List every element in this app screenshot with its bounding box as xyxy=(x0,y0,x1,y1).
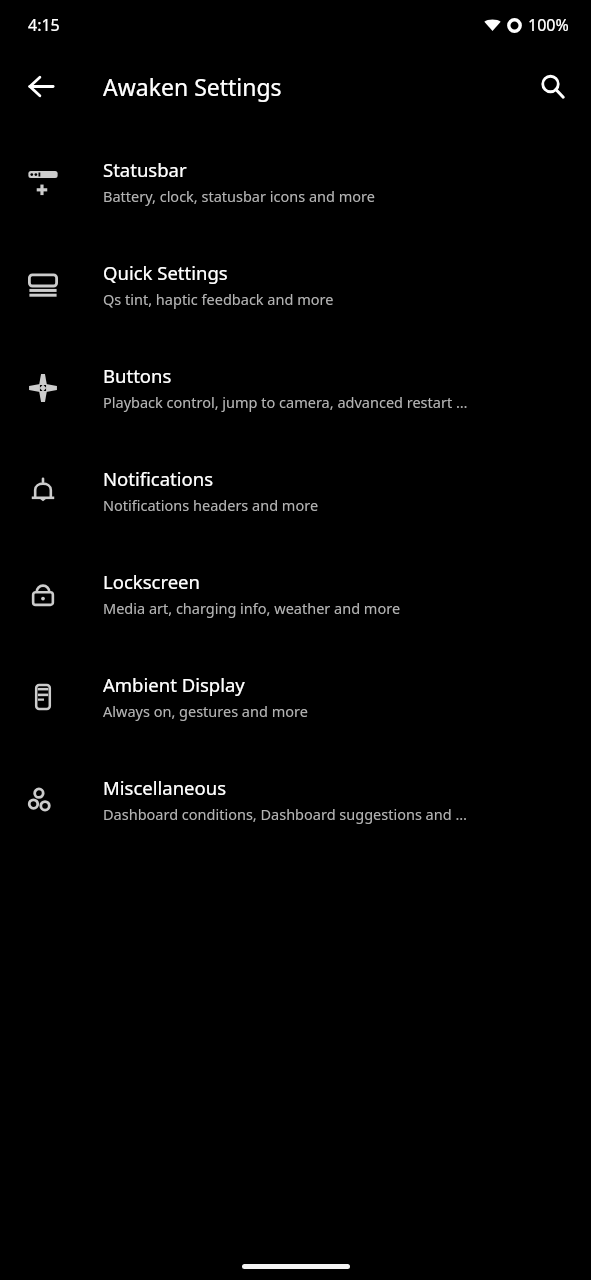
staticText: Buttons xyxy=(103,363,172,388)
staticText: Miscellaneous xyxy=(103,775,227,800)
staticText: Dashboard conditions, Dashboard suggesti… xyxy=(103,804,467,824)
staticText: Notifications xyxy=(103,466,214,491)
button[interactable]: Back xyxy=(14,59,68,113)
staticText: Notifications headers and more xyxy=(103,495,319,515)
staticText: Lockscreen xyxy=(103,569,200,594)
staticText: 4:15 xyxy=(28,14,60,36)
button[interactable]: Search xyxy=(525,59,579,113)
staticText: 100% xyxy=(528,14,569,36)
staticText: Quick Settings xyxy=(103,260,228,285)
button[interactable]: Notifications xyxy=(0,439,591,542)
staticText: Qs tint, haptic feedback and more xyxy=(103,289,334,309)
staticText: Battery, clock, statusbar icons and more xyxy=(103,186,375,206)
button[interactable]: Lockscreen xyxy=(0,542,591,645)
staticText: Always on, gestures and more xyxy=(103,701,308,721)
button[interactable]: Buttons xyxy=(0,336,591,439)
staticText: Playback control, jump to camera, advanc… xyxy=(103,392,468,412)
staticText: Awaken Settings xyxy=(103,71,282,102)
staticText: Media art, charging info, weather and mo… xyxy=(103,598,401,618)
button[interactable]: Miscellaneous xyxy=(0,748,591,851)
staticText: Ambient Display xyxy=(103,672,245,697)
button[interactable]: Statusbar xyxy=(0,130,591,233)
button[interactable]: Quick Settings xyxy=(0,233,591,336)
button[interactable]: Ambient Display xyxy=(0,645,591,748)
staticText: Statusbar xyxy=(103,157,187,182)
